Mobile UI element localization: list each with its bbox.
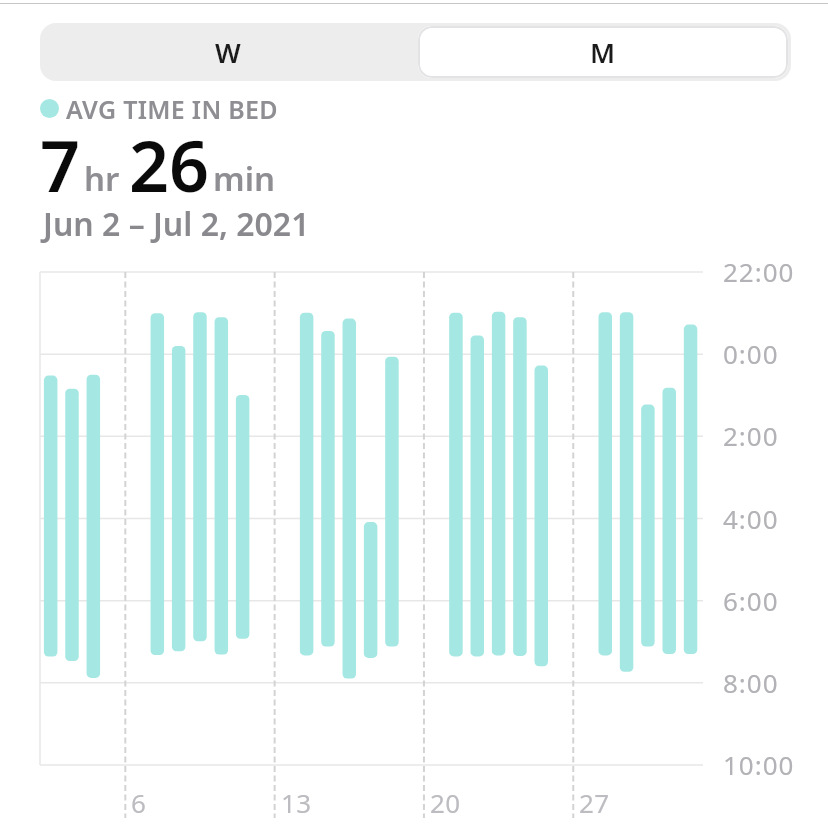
button[interactable]: W [40, 23, 415, 81]
staticText: 4:00 [723, 501, 779, 536]
staticText: 22:00 [723, 254, 795, 289]
staticText: min [213, 156, 276, 201]
staticText: 7 [40, 117, 81, 212]
staticText: 27 [579, 785, 610, 820]
staticText: 8:00 [723, 665, 779, 700]
staticText: 20 [430, 785, 461, 820]
staticText: 26 [129, 117, 210, 212]
staticText: AVG TIME IN BED [66, 92, 278, 126]
staticText: Jun 2 – Jul 2, 2021 [43, 202, 310, 246]
staticText: 6:00 [723, 583, 779, 618]
staticText: 2:00 [723, 418, 779, 453]
staticText: 13 [281, 785, 312, 820]
button[interactable]: M [415, 23, 791, 81]
staticText: M [590, 34, 616, 71]
staticText: 0:00 [723, 336, 779, 371]
staticText: 6 [131, 785, 147, 820]
staticText: hr [84, 156, 120, 201]
staticText: W [215, 34, 241, 71]
staticText: 10:00 [723, 747, 795, 782]
